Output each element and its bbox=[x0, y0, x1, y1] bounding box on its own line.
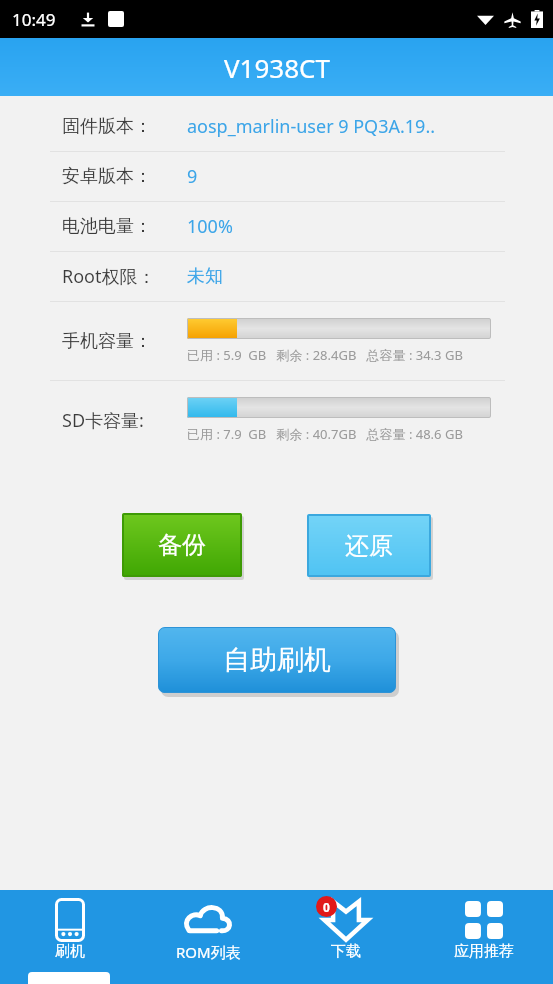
staticText: 电池电量： bbox=[62, 215, 187, 238]
staticText: 9 bbox=[187, 164, 198, 189]
button[interactable]: 备份 bbox=[122, 513, 242, 577]
other: 应用推荐 bbox=[465, 901, 503, 939]
staticText: 应用推荐 bbox=[454, 942, 514, 961]
staticText: 手机容量： bbox=[62, 330, 187, 353]
staticText: SD卡容量: bbox=[62, 408, 187, 433]
staticText: V1938CT bbox=[224, 50, 330, 85]
staticText: 备份 bbox=[158, 530, 206, 560]
staticText: 刷机 bbox=[55, 942, 85, 961]
button[interactable]: SD卡容量: bbox=[0, 381, 553, 459]
staticText: 安卓版本： bbox=[62, 165, 187, 188]
staticText: 100% bbox=[187, 214, 233, 239]
staticText: 下载 bbox=[331, 942, 361, 961]
staticText: 已用 : 5.9 GB 剩余 : 28.4GB 总容量 : 34.3 GB bbox=[187, 346, 463, 364]
button[interactable]: 应用推荐 bbox=[415, 890, 553, 984]
staticText: 0 bbox=[323, 899, 330, 915]
other: 下载 bbox=[323, 899, 369, 941]
button[interactable]: 固件版本： bbox=[0, 102, 553, 151]
button[interactable]: 安卓版本： bbox=[0, 152, 553, 201]
staticText: 自助刷机 bbox=[223, 643, 331, 677]
button[interactable]: 电池电量： bbox=[0, 202, 553, 251]
staticText: 10:49 bbox=[12, 8, 56, 31]
staticText: aosp_marlin-user 9 PQ3A.19.. bbox=[187, 114, 436, 139]
button[interactable]: 手机容量： bbox=[0, 302, 553, 380]
other: ROM列表 bbox=[184, 902, 232, 938]
button[interactable]: 刷机 bbox=[0, 890, 139, 984]
staticText: 固件版本： bbox=[62, 115, 187, 138]
staticText: 还原 bbox=[345, 531, 393, 561]
staticText: ROM列表 bbox=[176, 942, 241, 962]
button[interactable]: ROM列表 bbox=[139, 890, 277, 984]
staticText: 已用 : 7.9 GB 剩余 : 40.7GB 总容量 : 48.6 GB bbox=[187, 425, 463, 443]
button[interactable]: 下载 bbox=[277, 890, 415, 984]
staticText: Root权限： bbox=[62, 264, 187, 289]
staticText: 未知 bbox=[187, 265, 223, 288]
button[interactable]: 自助刷机 bbox=[158, 627, 396, 693]
other: 刷机 bbox=[55, 898, 85, 942]
button[interactable]: 还原 bbox=[307, 514, 431, 577]
button[interactable]: Root权限： bbox=[0, 252, 553, 301]
